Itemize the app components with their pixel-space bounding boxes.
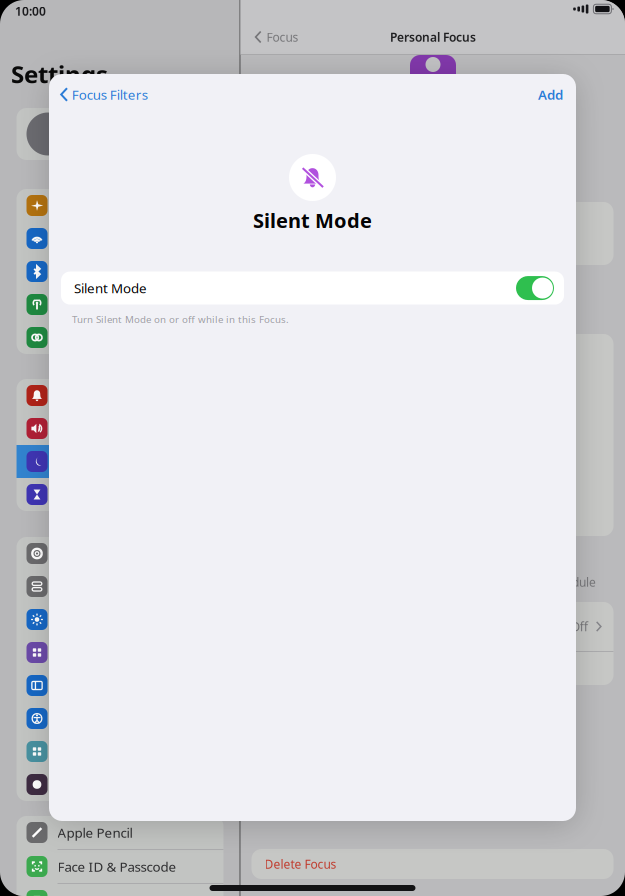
staticText: Focus Filters [72, 86, 148, 103]
button[interactable]: Focus Filters [49, 77, 148, 112]
staticText: Delete Focus [264, 856, 336, 872]
button[interactable]: Silent Mode [61, 272, 564, 305]
staticText: Turn Silent Mode on or off while in this… [72, 313, 289, 326]
button[interactable]: Face ID & Passcode [16, 850, 223, 883]
button[interactable] [16, 735, 223, 768]
button[interactable] [16, 768, 223, 801]
button[interactable] [16, 288, 223, 321]
button[interactable] [16, 537, 223, 570]
staticText: Apple Pencil [57, 824, 132, 841]
staticText: 10:00 [15, 3, 46, 19]
button[interactable]: Apple Pencil [16, 816, 223, 849]
staticText: Personal Focus [390, 29, 476, 45]
button[interactable]: Focus [244, 22, 309, 52]
button[interactable] [16, 636, 223, 669]
staticText: Settings [11, 58, 108, 90]
button[interactable]: Off [251, 602, 613, 651]
button[interactable] [16, 445, 223, 478]
button[interactable] [16, 478, 223, 511]
staticText: Off [571, 618, 588, 634]
staticText: Add [538, 86, 563, 103]
button[interactable] [16, 189, 223, 222]
button[interactable]: Battery [16, 884, 223, 896]
staticText: Silent Mode [74, 279, 147, 297]
button[interactable] [16, 412, 223, 445]
button[interactable] [16, 570, 223, 603]
button[interactable] [16, 702, 223, 735]
button[interactable] [16, 379, 223, 412]
staticText: Focus [266, 29, 298, 45]
button[interactable] [16, 222, 223, 255]
button[interactable] [16, 603, 223, 636]
button[interactable]: Delete Focus [251, 849, 613, 879]
staticText: Face ID & Passcode [57, 858, 176, 875]
button[interactable] [16, 321, 223, 354]
button[interactable] [16, 669, 223, 702]
staticText: Silent Mode [253, 207, 372, 234]
staticText: Schedule [545, 574, 596, 590]
button[interactable]: Add [538, 77, 576, 112]
button[interactable] [16, 255, 223, 288]
